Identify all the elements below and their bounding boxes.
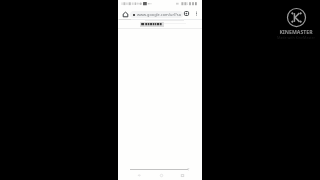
button[interactable]: Share page bbox=[182, 9, 191, 18]
button[interactable]: Home bbox=[120, 9, 130, 19]
button[interactable]: www.google.com/url?sa bbox=[130, 11, 183, 18]
button[interactable]: Home bbox=[158, 172, 165, 179]
staticText: Made with KineMaster bbox=[274, 35, 318, 40]
staticText: www.google.com/url?sa bbox=[137, 12, 181, 17]
button[interactable]: Back bbox=[136, 172, 143, 179]
button[interactable]: More options bbox=[192, 9, 201, 18]
staticText: KINEMASTER bbox=[279, 28, 313, 35]
button[interactable] bbox=[140, 22, 164, 27]
button[interactable]: Recent apps bbox=[179, 172, 186, 179]
